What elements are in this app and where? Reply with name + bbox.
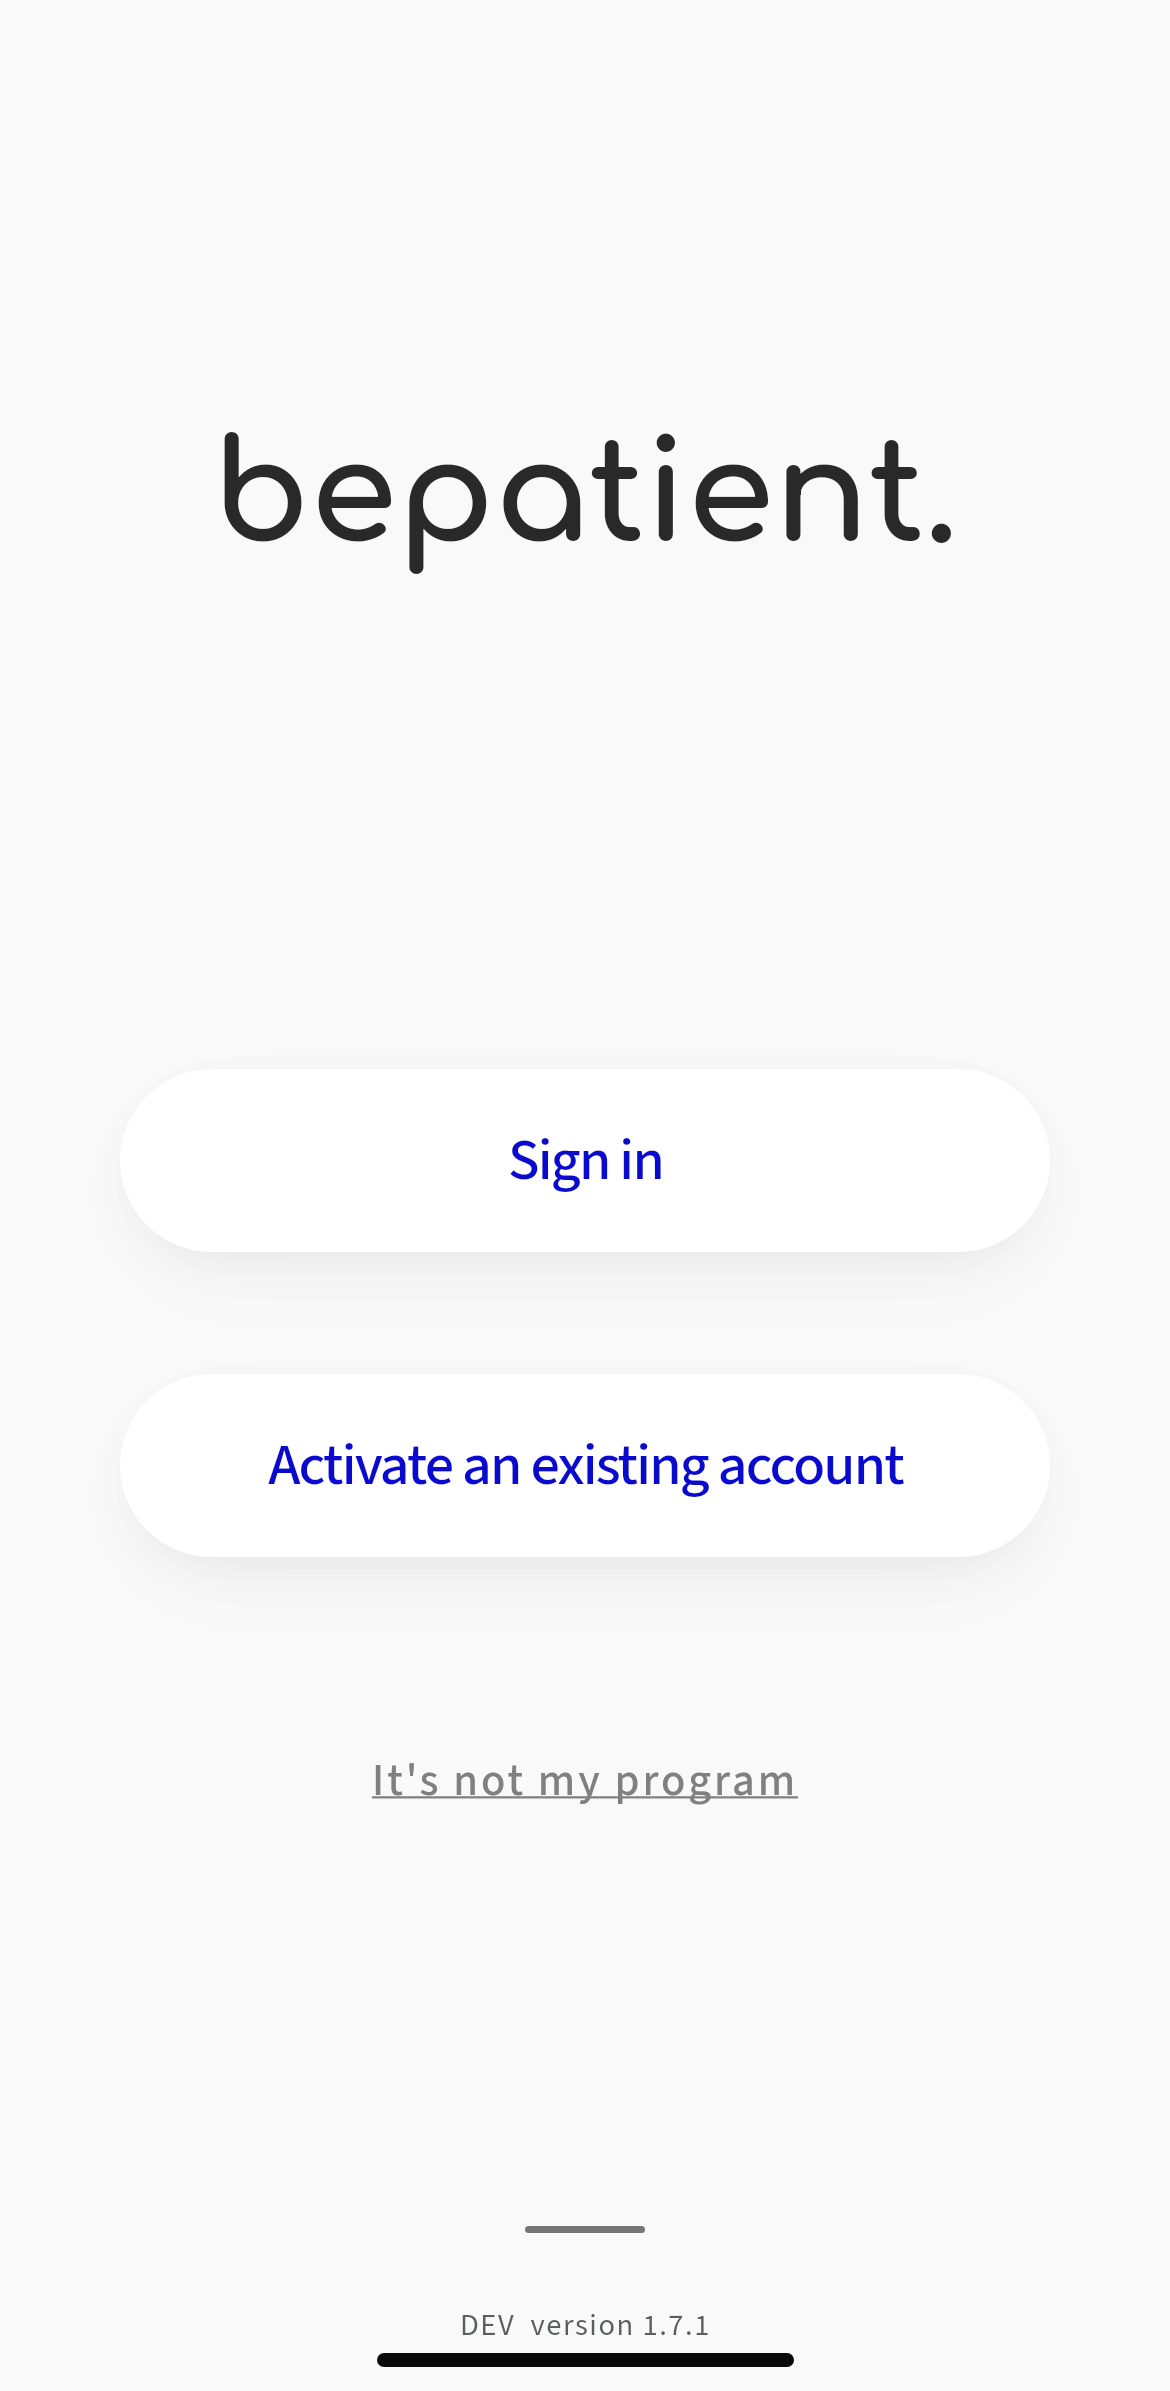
staticText: It's not my program [372,1749,799,1813]
button[interactable]: It's not my program [342,1734,829,1828]
staticText: Activate an existing account [268,1424,903,1507]
other: Drag handle [525,2226,645,2233]
button[interactable]: Activate an existing account [120,1374,1050,1557]
staticText: DEV version 1.7.1 [460,2304,711,2348]
button[interactable]: Sign in [120,1069,1050,1252]
staticText: Sign in [508,1119,663,1202]
staticText: bepatient. [212,418,958,574]
